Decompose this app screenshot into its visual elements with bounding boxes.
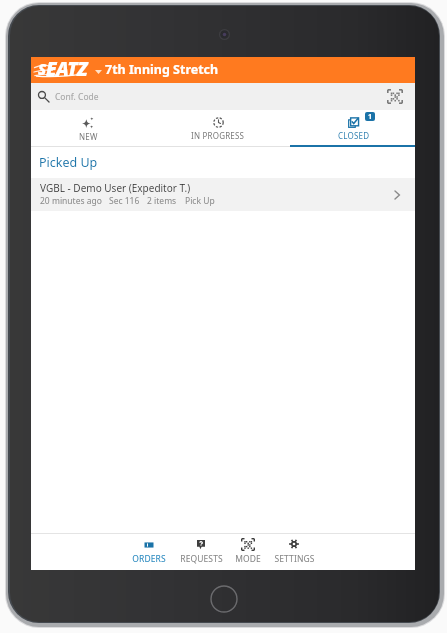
button[interactable]: MODE (223, 534, 273, 568)
staticText: MODE (235, 553, 261, 565)
staticText: VGBL - Demo User (Expeditor T.) (40, 181, 191, 195)
button[interactable]: IN PROGRESS (154, 110, 282, 145)
staticText: 2 items (147, 195, 177, 207)
button[interactable]: VGBL - Demo User (Expeditor T.) (31, 178, 415, 211)
staticText: 1 (368, 112, 373, 121)
button[interactable]: REQUESTS (176, 534, 226, 568)
button[interactable]: ORDERS (124, 534, 174, 568)
staticText: ORDERS (132, 553, 166, 565)
staticText: IN PROGRESS (191, 130, 245, 141)
staticText: REQUESTS (180, 553, 223, 565)
button[interactable]: CLOSED (291, 110, 416, 145)
staticText: CLOSED (338, 130, 370, 141)
staticText: 7th Inning Stretch (105, 61, 219, 78)
staticText: NEW (79, 131, 98, 142)
staticText: Sec 116 (109, 195, 140, 207)
staticText: 20 minutes ago (40, 195, 102, 207)
staticText: Pick Up (185, 195, 215, 207)
staticText: SETTINGS (274, 553, 315, 565)
staticText: Conf. Code (55, 91, 99, 103)
button[interactable]: SETTINGS (269, 534, 319, 568)
button[interactable]: Scan QR code (387, 89, 403, 104)
staticText: EATZ (46, 56, 87, 82)
staticText: Picked Up (39, 154, 98, 171)
button[interactable]: NEW (28, 110, 148, 145)
staticText: S (38, 59, 47, 79)
